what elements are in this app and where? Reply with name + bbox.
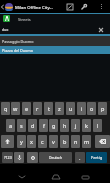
button[interactable]: Passaggio Duomo: [0, 36, 110, 46]
staticText: Milan Offline City...: [15, 4, 53, 10]
button[interactable]: p: [98, 102, 107, 115]
staticText: Fertig: [91, 155, 103, 161]
button[interactable]: b: [60, 135, 69, 148]
button[interactable]: i: [77, 102, 86, 115]
button[interactable]: Deutsch: [39, 152, 72, 163]
button[interactable]: Emoji: [27, 152, 38, 163]
button[interactable]: ?123: [2, 152, 13, 163]
staticText: h: [63, 122, 67, 129]
button[interactable]: Backspace: [95, 135, 110, 148]
staticText: g: [52, 122, 56, 129]
staticText: .: [79, 154, 81, 161]
staticText: y: [20, 138, 23, 145]
staticText: w: [13, 105, 18, 112]
staticText: a: [9, 122, 13, 129]
button[interactable]: z: [55, 102, 64, 115]
staticText: Piazza del Duomo: [2, 48, 33, 53]
button[interactable]: Voice input: [14, 152, 24, 163]
button[interactable]: Clear text: [96, 25, 106, 34]
button[interactable]: h: [60, 119, 69, 132]
button[interactable]: y: [17, 135, 26, 148]
staticText: k: [85, 122, 88, 129]
button[interactable]: q: [1, 102, 10, 115]
button[interactable]: Tools: [77, 0, 91, 13]
staticText: q: [4, 105, 8, 112]
staticText: o: [90, 105, 94, 112]
button[interactable]: v: [49, 135, 58, 148]
staticText: Passaggio Duomo: [2, 39, 34, 44]
staticText: v: [52, 138, 55, 145]
staticText: i: [81, 105, 83, 112]
button[interactable]: .: [75, 152, 85, 163]
button[interactable]: Home: [45, 164, 67, 183]
button[interactable]: r: [33, 102, 42, 115]
button[interactable]: m: [82, 135, 91, 148]
button[interactable]: n: [71, 135, 80, 148]
staticText: j: [75, 122, 77, 129]
staticText: b: [63, 138, 67, 145]
staticText: p: [101, 105, 105, 112]
staticText: t: [48, 105, 50, 112]
staticText: c: [41, 138, 44, 145]
staticText: duo: [2, 27, 9, 32]
staticText: ?123: [4, 155, 12, 160]
button[interactable]: k: [82, 119, 91, 132]
staticText: d: [31, 122, 35, 129]
button[interactable]: Recent apps: [75, 164, 96, 183]
button[interactable]: Shift: [1, 135, 14, 148]
staticText: x: [30, 138, 33, 145]
button[interactable]: u: [66, 102, 75, 115]
button[interactable]: t: [44, 102, 53, 115]
button[interactable]: g: [49, 119, 58, 132]
staticText: m: [84, 138, 90, 145]
staticText: n: [74, 138, 78, 145]
staticText: z: [58, 105, 61, 112]
button[interactable]: c: [38, 135, 47, 148]
button[interactable]: Fertig: [86, 152, 107, 163]
button[interactable]: l: [93, 119, 102, 132]
button[interactable]: x: [27, 135, 36, 148]
button[interactable]: Navigate up: [0, 0, 5, 13]
button[interactable]: j: [71, 119, 80, 132]
button[interactable]: e: [22, 102, 31, 115]
staticText: l: [97, 122, 99, 129]
staticText: s: [20, 122, 23, 129]
button[interactable]: More options: [96, 0, 107, 13]
staticText: f: [43, 122, 45, 129]
staticText: r: [36, 105, 39, 112]
button[interactable]: d: [28, 119, 37, 132]
button[interactable]: Back: [11, 164, 32, 183]
button[interactable]: Streets: [0, 14, 110, 24]
staticText: u: [69, 105, 73, 112]
button[interactable]: Piazza del Duomo: [0, 46, 110, 54]
button[interactable]: a: [6, 119, 15, 132]
staticText: Deutsch: [49, 155, 63, 160]
button[interactable]: s: [17, 119, 26, 132]
staticText: Streets: [18, 17, 31, 22]
button[interactable]: w: [11, 102, 20, 115]
button[interactable]: f: [39, 119, 48, 132]
button[interactable]: o: [87, 102, 96, 115]
staticText: e: [25, 105, 29, 112]
button[interactable]: Screenshot: [63, 0, 77, 13]
